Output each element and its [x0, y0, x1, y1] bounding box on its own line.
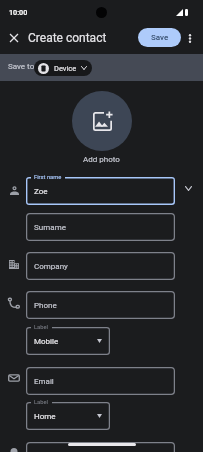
button[interactable]: More options: [179, 27, 201, 49]
staticText: Save: [151, 33, 169, 42]
staticText: Label: [34, 324, 49, 331]
staticText: Device: [54, 64, 77, 73]
button[interactable]: Surname: [26, 213, 175, 241]
button[interactable]: Email: [26, 367, 175, 395]
staticText: Email: [34, 377, 54, 386]
button[interactable]: Expand name fields: [180, 180, 196, 196]
button[interactable]: Zoe: [26, 177, 175, 205]
button[interactable]: Company: [26, 252, 175, 280]
staticText: Mobile: [34, 337, 59, 346]
button[interactable]: Add photo: [72, 91, 132, 151]
button[interactable]: Home: [26, 402, 110, 430]
button[interactable]: Device: [34, 60, 92, 76]
button[interactable]: Phone: [26, 291, 175, 319]
staticText: Zoe: [34, 187, 48, 196]
staticText: Create contact: [28, 31, 107, 45]
button[interactable]: Save: [138, 28, 181, 47]
staticText: Surname: [34, 223, 66, 232]
staticText: Save to: [8, 62, 35, 71]
button[interactable]: Mobile: [26, 327, 110, 355]
staticText: Add photo: [83, 155, 120, 164]
staticText: 10:00: [9, 8, 28, 16]
staticText: Home: [34, 412, 56, 421]
staticText: Label: [34, 399, 49, 406]
staticText: First name: [34, 174, 62, 181]
button[interactable]: Close: [3, 27, 25, 49]
staticText: Phone: [34, 301, 57, 310]
button[interactable]: [26, 442, 175, 452]
staticText: Company: [34, 262, 68, 271]
